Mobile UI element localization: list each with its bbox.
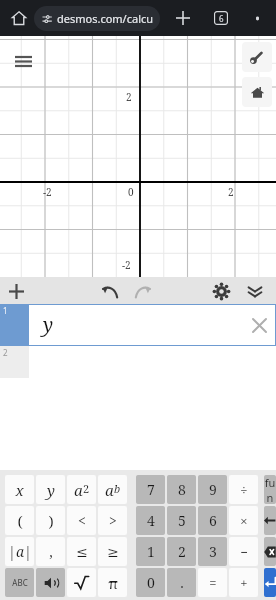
button[interactable]: ≤: [67, 537, 96, 566]
button[interactable]: +: [229, 568, 258, 597]
button[interactable]: Settings: [208, 278, 234, 304]
button[interactable]: Enter: [264, 568, 276, 597]
staticText: 2: [3, 347, 8, 358]
staticText: 8: [178, 480, 186, 499]
button[interactable]: Delete expression: [248, 314, 270, 336]
button[interactable]: ×: [229, 506, 258, 535]
button[interactable]: Backspace: [264, 537, 276, 566]
staticText: >: [109, 511, 117, 530]
staticText: y: [47, 480, 55, 500]
staticText: 0: [128, 185, 134, 199]
staticText: y: [43, 312, 54, 338]
button[interactable]: 4: [136, 506, 165, 535]
button[interactable]: ÷: [229, 475, 258, 504]
staticText: 1: [147, 542, 155, 561]
staticText: funcs: [264, 475, 276, 504]
staticText: 7: [147, 480, 155, 499]
button[interactable]: 3: [198, 537, 227, 566]
button[interactable]: desmos.com/calcu: [34, 6, 160, 31]
button[interactable]: Home: [7, 6, 31, 30]
button[interactable]: Left: [264, 506, 276, 535]
button[interactable]: 5: [167, 506, 196, 535]
button[interactable]: <: [67, 506, 96, 535]
button[interactable]: More options: [244, 5, 270, 31]
staticText: desmos.com/calcu: [57, 11, 154, 26]
staticText: =: [209, 574, 217, 592]
button[interactable]: Settings: [242, 42, 272, 72]
staticText: a: [74, 480, 83, 500]
staticText: ≥: [107, 544, 119, 560]
button[interactable]: −: [229, 537, 258, 566]
button[interactable]: Redo: [130, 278, 156, 304]
staticText: 9: [209, 480, 217, 499]
button[interactable]: y: [36, 475, 65, 504]
button[interactable]: a: [98, 475, 127, 504]
staticText: 2: [228, 185, 234, 199]
button[interactable]: .: [167, 568, 196, 597]
button[interactable]: |a|: [5, 537, 34, 566]
staticText: -2: [43, 185, 52, 199]
button[interactable]: ,: [36, 537, 65, 566]
staticText: ,: [49, 542, 53, 561]
staticText: 4: [147, 511, 155, 530]
button[interactable]: Collapse: [242, 278, 268, 304]
staticText: .: [180, 573, 184, 592]
button[interactable]: ABC: [5, 568, 34, 597]
button[interactable]: >: [98, 506, 127, 535]
button[interactable]: Add expression: [4, 279, 28, 303]
staticText: ×: [240, 512, 248, 530]
button[interactable]: a: [67, 475, 96, 504]
button[interactable]: Square root: [67, 568, 96, 597]
staticText: 5: [178, 511, 186, 530]
staticText: ): [48, 511, 54, 531]
staticText: 6: [219, 13, 224, 24]
button[interactable]: =: [198, 568, 227, 597]
staticText: +: [240, 574, 248, 592]
staticText: −: [240, 543, 248, 561]
staticText: a: [105, 480, 114, 500]
staticText: ABC: [12, 577, 28, 588]
staticText: |a|: [8, 542, 32, 561]
button[interactable]: 1: [136, 537, 165, 566]
staticText: x: [15, 480, 24, 500]
staticText: 3: [209, 542, 217, 561]
staticText: 0: [147, 573, 155, 592]
staticText: ≤: [76, 544, 88, 560]
button[interactable]: 2: [167, 537, 196, 566]
staticText: <: [78, 511, 86, 530]
button[interactable]: Undo: [96, 278, 122, 304]
staticText: ÷: [240, 481, 248, 499]
staticText: 2: [83, 481, 90, 496]
button[interactable]: Sound: [36, 568, 65, 597]
button[interactable]: (: [5, 506, 34, 535]
button[interactable]: 8: [167, 475, 196, 504]
button[interactable]: 7: [136, 475, 165, 504]
staticText: -2: [122, 258, 131, 272]
staticText: 2: [126, 90, 132, 104]
button[interactable]: ): [36, 506, 65, 535]
staticText: (: [17, 511, 23, 531]
button[interactable]: funcs: [264, 475, 276, 504]
staticText: 1: [3, 305, 8, 316]
button[interactable]: Home view: [242, 77, 272, 107]
staticText: π: [108, 573, 118, 593]
button[interactable]: 2: [0, 346, 276, 378]
button[interactable]: 0: [136, 568, 165, 597]
button[interactable]: π: [98, 568, 127, 597]
button[interactable]: x: [5, 475, 34, 504]
staticText: 6: [209, 511, 217, 530]
button[interactable]: ≥: [98, 537, 127, 566]
button[interactable]: Menu: [10, 48, 36, 74]
button[interactable]: New tab: [170, 5, 196, 31]
button[interactable]: 1: [0, 304, 276, 346]
button[interactable]: 9: [198, 475, 227, 504]
button[interactable]: Tabs: [208, 5, 234, 31]
staticText: b: [114, 481, 121, 496]
staticText: 2: [178, 542, 186, 561]
button[interactable]: 6: [198, 506, 227, 535]
